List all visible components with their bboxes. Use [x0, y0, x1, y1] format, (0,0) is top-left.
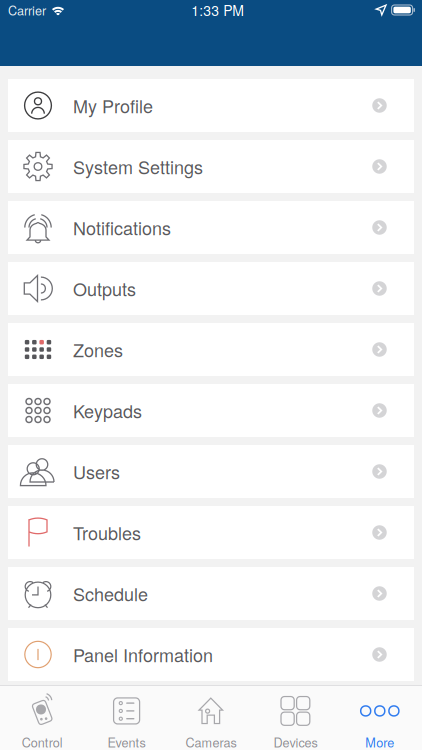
button[interactable]: Zones: [8, 323, 414, 376]
button[interactable]: Control: [0, 685, 84, 750]
button[interactable]: Outputs: [8, 262, 414, 315]
button[interactable]: Events: [84, 685, 169, 750]
staticText: Notifications: [73, 215, 171, 240]
button[interactable]: System Settings: [8, 140, 414, 193]
button[interactable]: Notifications: [8, 201, 414, 254]
staticText: Keypads: [73, 398, 142, 423]
staticText: Events: [108, 733, 146, 750]
staticText: 1:33 PM: [191, 0, 244, 20]
staticText: Troubles: [73, 520, 141, 545]
staticText: Control: [22, 733, 63, 750]
staticText: My Profile: [73, 93, 153, 118]
staticText: Panel Information: [73, 642, 213, 667]
staticText: Devices: [273, 733, 317, 750]
button[interactable]: Schedule: [8, 567, 414, 620]
button[interactable]: Users: [8, 445, 414, 498]
button[interactable]: Devices: [253, 685, 338, 750]
button[interactable]: Keypads: [8, 384, 414, 437]
button[interactable]: More: [338, 685, 422, 750]
button[interactable]: My Profile: [8, 79, 414, 132]
staticText: Users: [73, 459, 120, 484]
button[interactable]: Cameras: [169, 685, 253, 750]
staticText: Cameras: [185, 733, 236, 750]
staticText: More: [365, 733, 394, 750]
staticText: Zones: [73, 337, 123, 362]
staticText: System Settings: [73, 154, 203, 179]
staticText: Schedule: [73, 581, 148, 606]
button[interactable]: Troubles: [8, 506, 414, 559]
button[interactable]: Panel Information: [8, 628, 414, 681]
staticText: Outputs: [73, 276, 136, 301]
staticText: Carrier: [8, 1, 46, 19]
